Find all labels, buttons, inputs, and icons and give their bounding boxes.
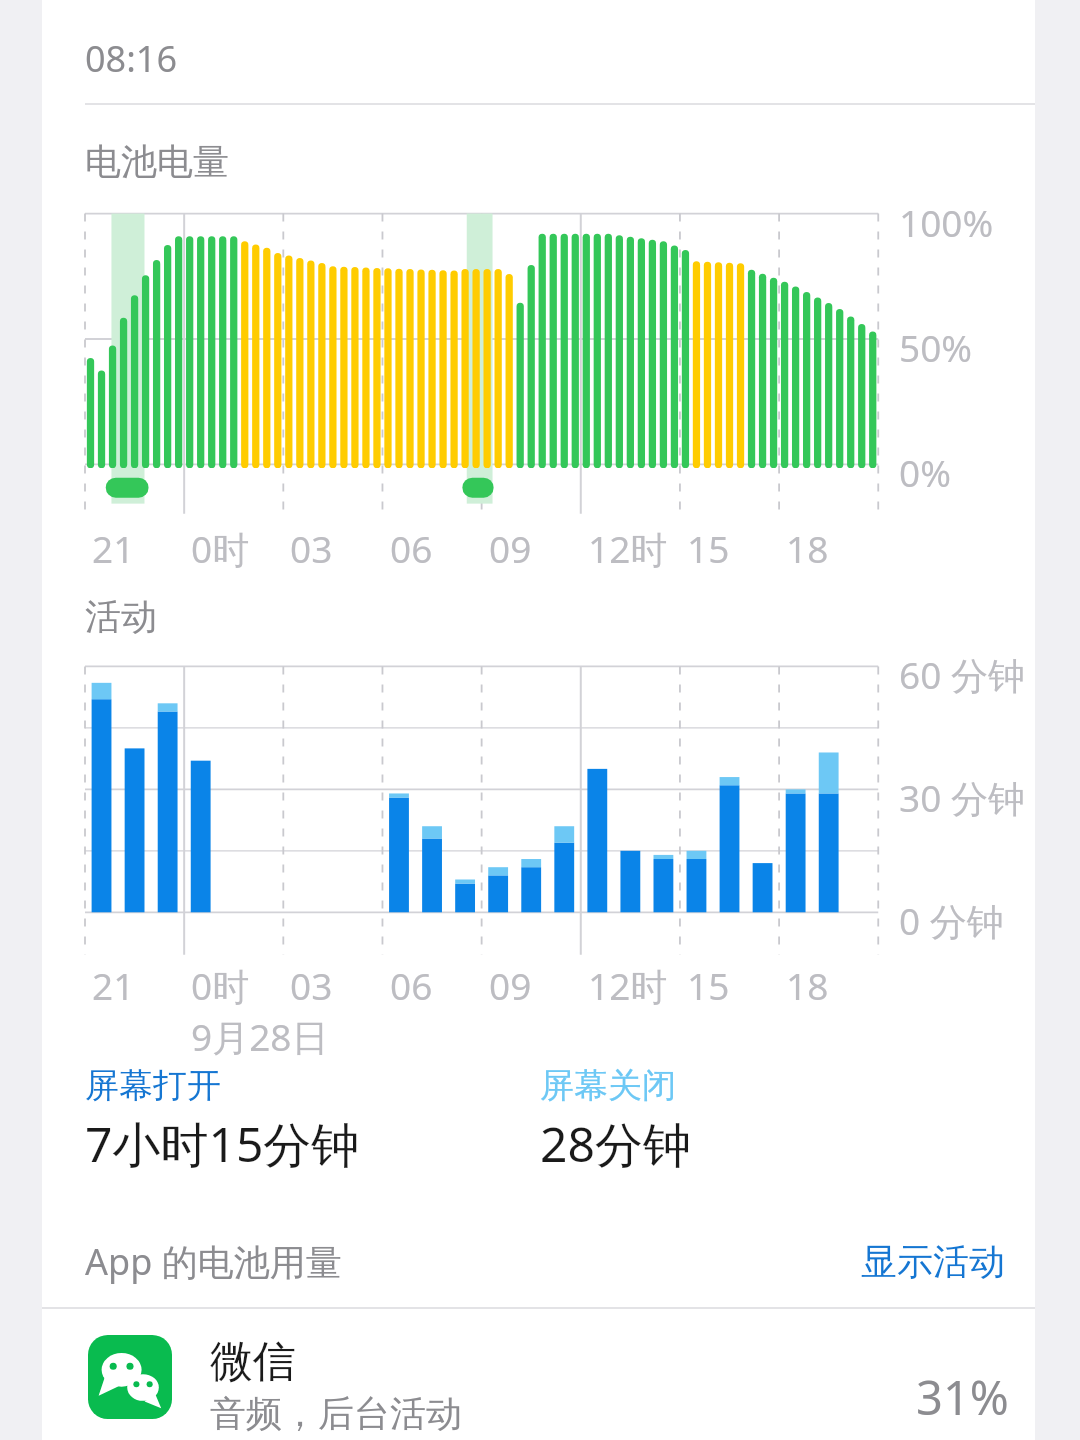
staticText: 15 xyxy=(687,960,730,1010)
other: 微信 xyxy=(88,1335,172,1419)
staticText: 03 xyxy=(290,960,333,1010)
staticText: 屏幕关闭 xyxy=(540,1064,676,1107)
staticText: 15 xyxy=(687,523,730,573)
staticText: 100% xyxy=(899,197,994,247)
staticText: App 的电池用量 xyxy=(85,1237,342,1286)
staticText: 7小时15分钟 xyxy=(85,1111,360,1177)
staticText: 31% xyxy=(916,1365,1009,1429)
staticText: 显示活动 xyxy=(861,1239,1005,1284)
staticText: 03 xyxy=(290,523,333,573)
staticText: 18 xyxy=(786,960,829,1010)
staticText: 9月28日 xyxy=(191,1011,329,1062)
staticText: 12时 xyxy=(588,523,668,574)
button[interactable]: 微信 xyxy=(42,1309,1035,1440)
staticText: 09 xyxy=(489,960,532,1010)
staticText: 0 分钟 xyxy=(899,895,1004,946)
staticText: 微信 xyxy=(210,1335,296,1389)
staticText: 08:16 xyxy=(85,34,178,83)
staticText: 18 xyxy=(786,523,829,573)
button[interactable]: 显示活动 xyxy=(857,1231,1009,1292)
staticText: 60 分钟 xyxy=(899,649,1025,700)
staticText: 50% xyxy=(899,322,973,372)
staticText: 06 xyxy=(390,960,433,1010)
staticText: 06 xyxy=(390,523,433,573)
staticText: 音频，后台活动 xyxy=(210,1391,462,1436)
staticText: 0时 xyxy=(191,960,250,1011)
staticText: 28分钟 xyxy=(540,1111,691,1177)
staticText: 30 分钟 xyxy=(899,772,1025,823)
staticText: 活动 xyxy=(85,594,157,639)
staticText: 电池电量 xyxy=(85,139,229,184)
staticText: 0% xyxy=(899,447,951,497)
staticText: 21 xyxy=(92,960,135,1010)
staticText: 21 xyxy=(92,523,135,573)
staticText: 屏幕打开 xyxy=(85,1064,221,1107)
staticText: 12时 xyxy=(588,960,668,1011)
staticText: 0时 xyxy=(191,523,250,574)
staticText: 09 xyxy=(489,523,532,573)
